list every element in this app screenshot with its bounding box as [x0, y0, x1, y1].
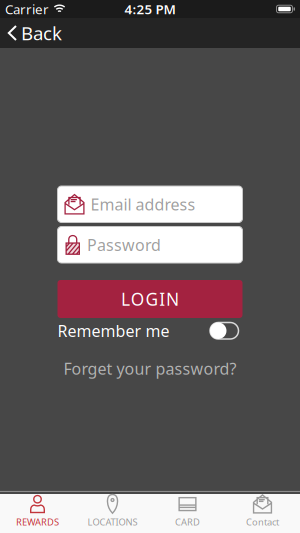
button[interactable]: Forget your password? [63, 358, 236, 379]
button[interactable]: Contact [225, 494, 300, 528]
button[interactable]: Email address [57, 186, 242, 222]
staticText: Remember me [57, 320, 169, 341]
button[interactable]: Password [57, 226, 242, 263]
staticText: Back [21, 21, 62, 45]
button[interactable]: LOCATIONS [75, 494, 150, 528]
staticText: 4:25 PM [124, 0, 175, 18]
staticText: LOGIN [121, 287, 179, 310]
staticText: Password [87, 234, 161, 255]
button[interactable] [210, 322, 242, 339]
button[interactable]: CARD [150, 494, 225, 528]
button[interactable]: REWARDS [0, 494, 75, 528]
staticText: Contact [246, 516, 279, 528]
button[interactable]: Back [0, 21, 62, 45]
staticText: LOCATIONS [87, 516, 137, 528]
staticText: REWARDS [16, 516, 59, 528]
staticText: Carrier [5, 0, 49, 18]
staticText: Email address [90, 194, 195, 215]
staticText: Forget your password? [63, 358, 236, 379]
staticText: CARD [175, 516, 200, 528]
button[interactable]: LOGIN [57, 280, 242, 318]
